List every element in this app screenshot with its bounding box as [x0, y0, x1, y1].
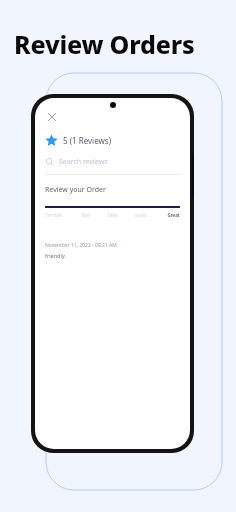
button[interactable]: Search reviews — [46, 157, 180, 167]
staticText: Great — [167, 212, 180, 218]
button[interactable]: Terrible — [45, 212, 72, 218]
button[interactable]: Great — [153, 212, 180, 218]
button[interactable]: Rating slider — [45, 202, 180, 211]
button[interactable]: 5 (1 Reviews) — [45, 134, 190, 147]
staticText: Review Orders — [14, 27, 195, 61]
button[interactable]: Good — [126, 212, 153, 218]
staticText: Review your Order — [45, 185, 106, 195]
staticText: friendly. — [45, 252, 66, 259]
staticText: Search reviews — [59, 157, 108, 167]
button[interactable]: Okay — [99, 212, 126, 218]
staticText: Good — [134, 212, 146, 218]
staticText: Terrible — [45, 212, 62, 218]
staticText: Bad — [81, 212, 90, 218]
staticText: November 11, 2022 - 09:21 AM — [45, 242, 117, 249]
staticText: 5 (1 Reviews) — [63, 135, 112, 146]
staticText: Okay — [107, 212, 118, 218]
button[interactable]: Bad — [72, 212, 99, 218]
button[interactable]: Close — [43, 108, 61, 126]
